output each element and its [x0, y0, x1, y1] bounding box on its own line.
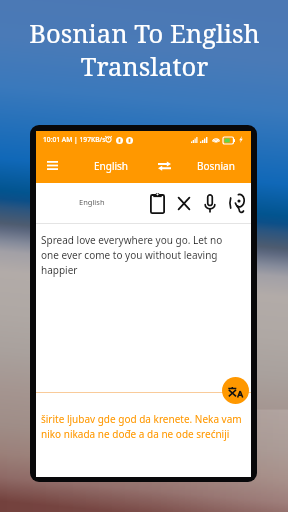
button[interactable]: Listen	[223, 189, 251, 217]
button[interactable]: Clear text	[170, 189, 198, 217]
button[interactable]: Bosnian	[184, 148, 248, 183]
staticText: Bosnian	[197, 159, 235, 173]
staticText: English	[94, 159, 129, 173]
button[interactable]: Swap languages	[149, 148, 179, 183]
button[interactable]: Voice input	[196, 189, 224, 217]
staticText: Bosnian To English Translator	[29, 16, 260, 83]
staticText: Spread love everywhere you go. Let no on…	[41, 233, 232, 277]
staticText: 10:01 AM | 197KB/s	[43, 135, 106, 144]
staticText: širite ljubav gde god da krenete. Neka v…	[41, 412, 243, 441]
staticText: English	[79, 197, 105, 207]
button[interactable]: Open navigation menu	[37, 148, 67, 183]
button[interactable]: Translate	[222, 377, 249, 404]
button[interactable]: English	[79, 148, 143, 183]
button[interactable]: Paste from clipboard	[143, 189, 171, 217]
